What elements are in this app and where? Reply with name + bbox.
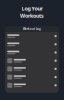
staticText: Workout Log	[23, 27, 41, 31]
staticText: Workouts	[20, 12, 44, 19]
button[interactable]	[5, 65, 58, 73]
button[interactable]	[5, 40, 58, 48]
button[interactable]	[5, 57, 58, 65]
button[interactable]	[5, 32, 58, 40]
staticText: Log Your	[21, 5, 42, 12]
button[interactable]	[5, 48, 58, 57]
button[interactable]	[5, 81, 58, 89]
button[interactable]	[5, 73, 58, 81]
